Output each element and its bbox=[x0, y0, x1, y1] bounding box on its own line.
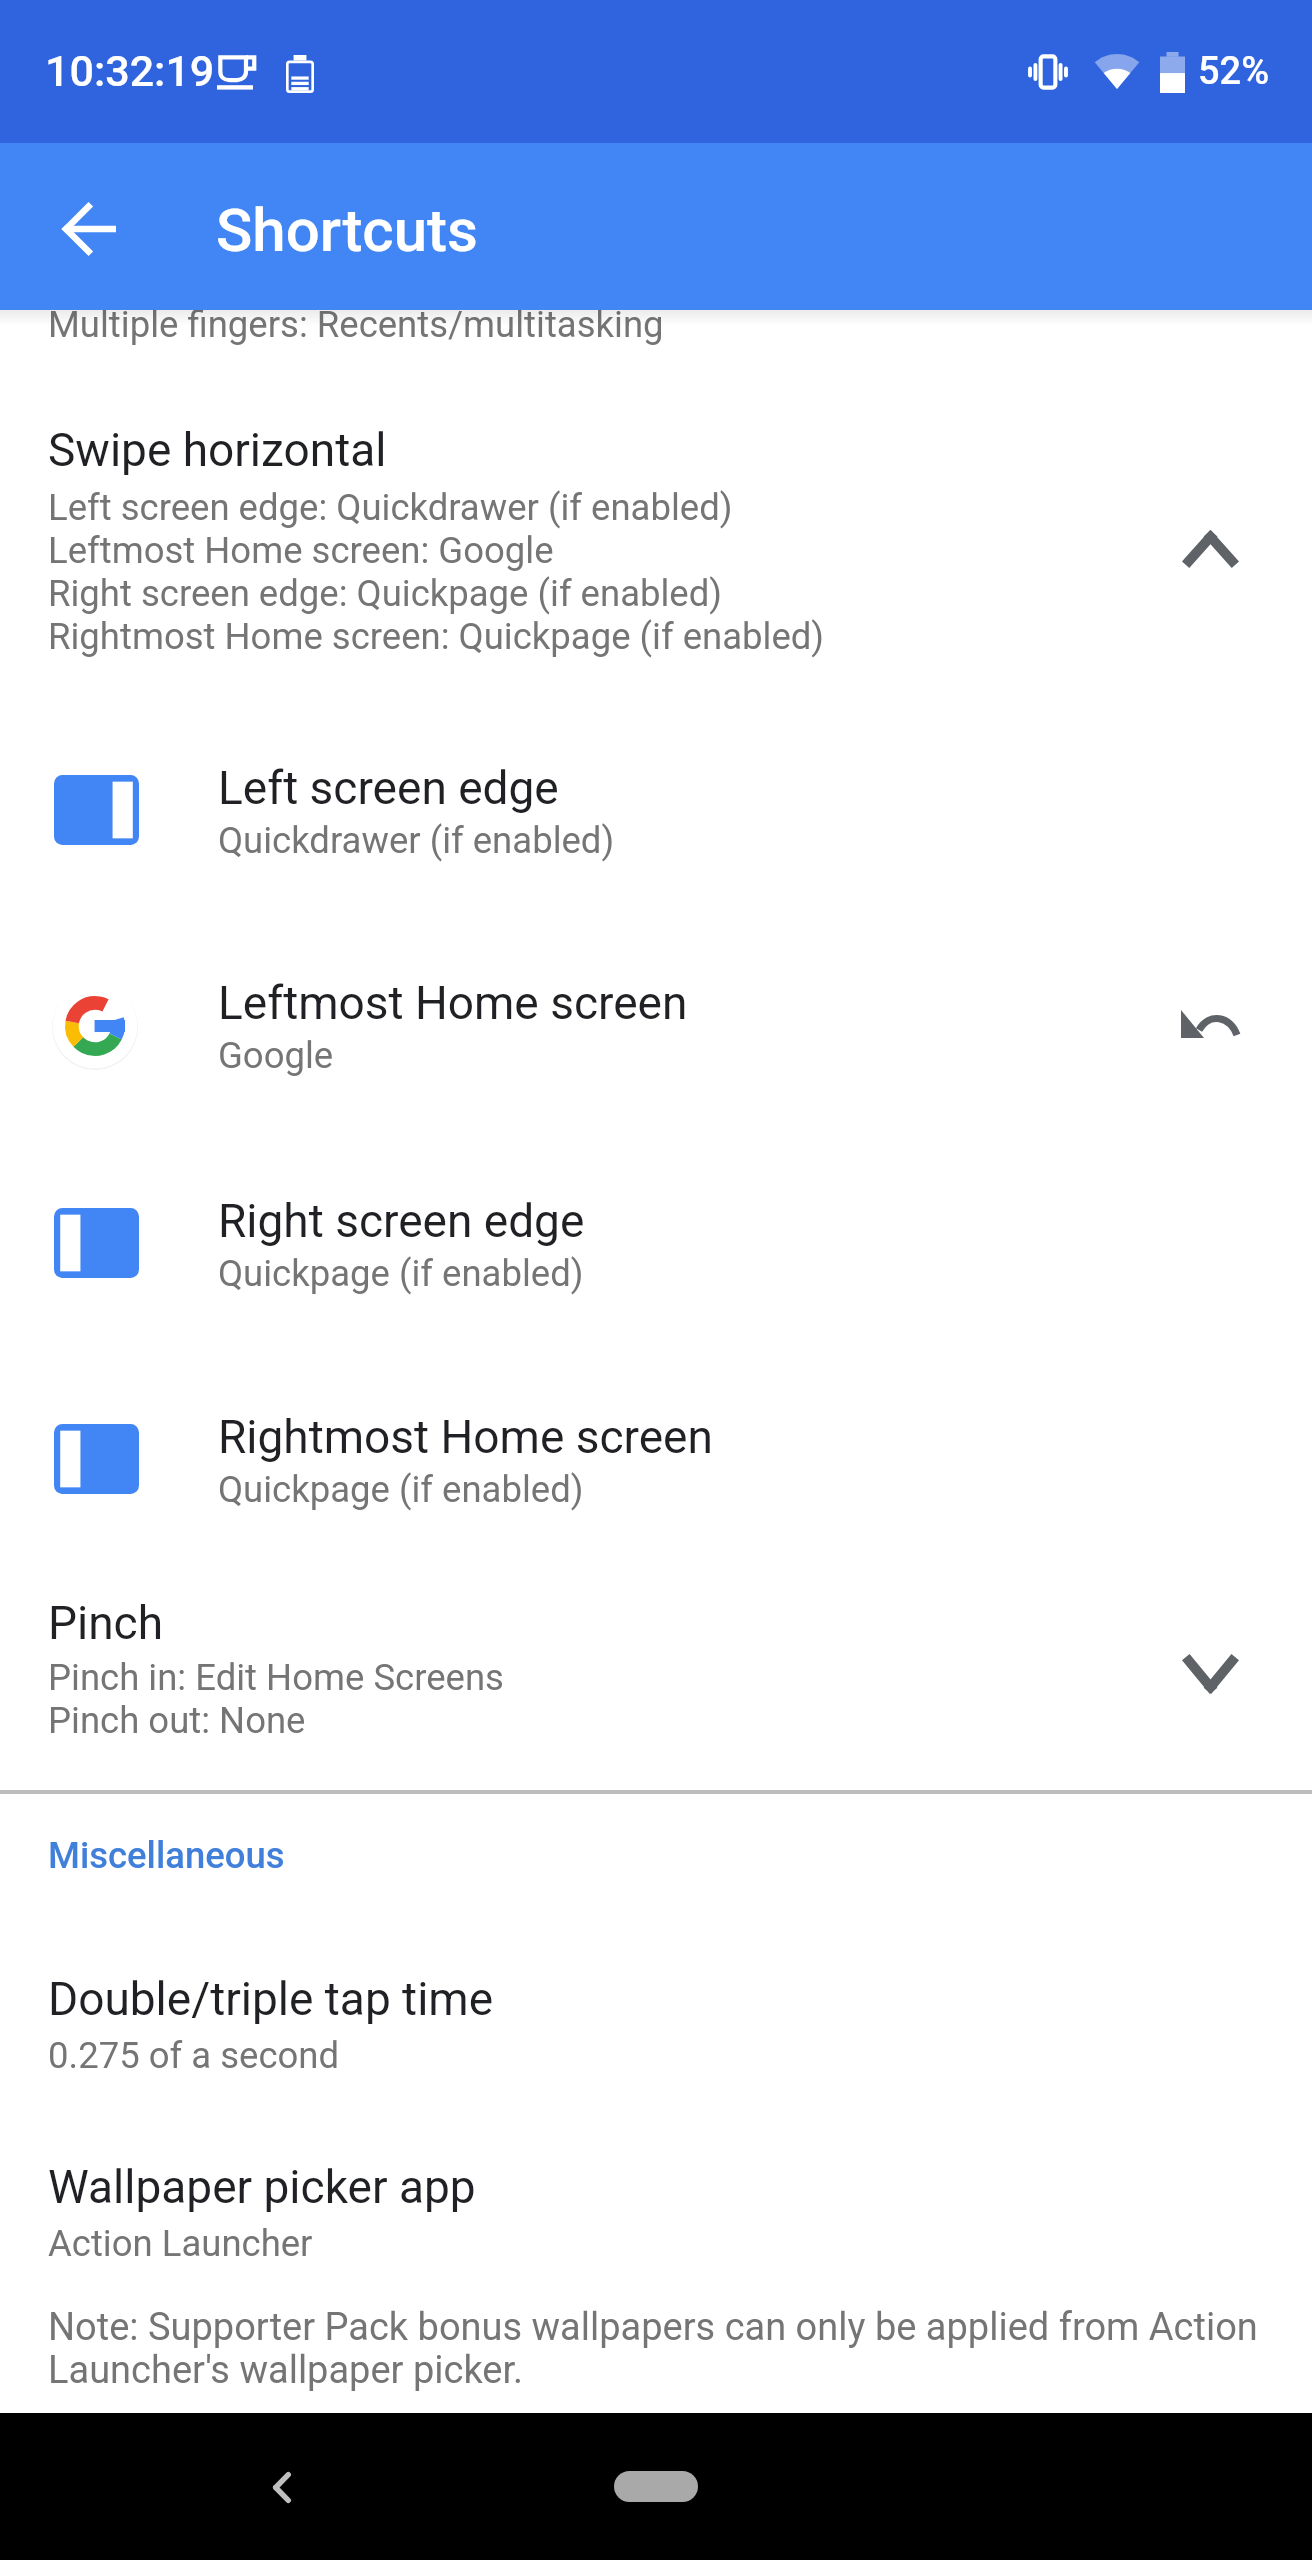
staticText: Action Launcher bbox=[48, 2222, 313, 2265]
staticText: Leftmost Home screen: Google bbox=[48, 529, 554, 572]
button[interactable]: Reset to default bbox=[1150, 980, 1270, 1100]
staticText: Right screen edge: Quickpage (if enabled… bbox=[48, 572, 723, 615]
button[interactable]: Right screen edge bbox=[0, 1178, 1312, 1338]
button[interactable]: Double/triple tap time bbox=[0, 1972, 1312, 2092]
staticText: Rightmost Home screen bbox=[218, 1410, 713, 1464]
staticText: Right screen edge bbox=[218, 1194, 585, 1248]
staticText: Left screen edge: Quickdrawer (if enable… bbox=[48, 486, 733, 529]
staticText: Left screen edge bbox=[218, 761, 559, 815]
staticText: Multiple fingers: Recents/multitasking bbox=[48, 303, 664, 346]
button[interactable]: Home bbox=[614, 2471, 698, 2502]
staticText: Leftmost Home screen bbox=[218, 976, 688, 1030]
button[interactable]: Swipe horizontal bbox=[0, 401, 1312, 681]
button[interactable]: Pinch bbox=[0, 1574, 1312, 1764]
staticText: Miscellaneous bbox=[48, 1834, 285, 1877]
button[interactable]: Rightmost Home screen bbox=[0, 1394, 1312, 1554]
staticText: Quickdrawer (if enabled) bbox=[218, 819, 615, 862]
button[interactable]: Leftmost Home screen bbox=[0, 960, 1312, 1120]
button[interactable]: Back bbox=[232, 2437, 332, 2537]
staticText: Quickpage (if enabled) bbox=[218, 1468, 584, 1511]
staticText: Wallpaper picker app bbox=[48, 2160, 476, 2214]
staticText: Pinch out: None bbox=[48, 1699, 306, 1742]
staticText: Google bbox=[218, 1034, 334, 1077]
staticText: Note: Supporter Pack bonus wallpapers ca… bbox=[48, 2305, 1263, 2392]
staticText: Double/triple tap time bbox=[48, 1972, 494, 2026]
button[interactable]: Navigate up bbox=[41, 177, 141, 277]
staticText: Swipe horizontal bbox=[48, 423, 387, 477]
staticText: 52% bbox=[1198, 49, 1270, 94]
staticText: Shortcuts bbox=[216, 195, 478, 265]
button[interactable]: Wallpaper picker app bbox=[0, 2160, 1312, 2280]
button[interactable]: Left screen edge bbox=[0, 745, 1312, 905]
staticText: Pinch bbox=[48, 1596, 164, 1650]
staticText: 10:32:19 bbox=[45, 46, 215, 96]
staticText: Rightmost Home screen: Quickpage (if ena… bbox=[48, 615, 825, 658]
staticText: Quickpage (if enabled) bbox=[218, 1252, 584, 1295]
staticText: Pinch in: Edit Home Screens bbox=[48, 1656, 504, 1699]
staticText: 0.275 of a second bbox=[48, 2034, 340, 2077]
